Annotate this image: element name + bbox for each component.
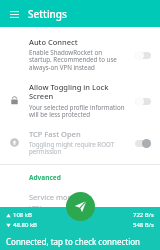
staticText: Your selected profile information will b… [29, 103, 125, 119]
staticText: Enable ShadowRocket on startup. Recommen… [29, 48, 117, 72]
staticText: VPN [29, 204, 42, 207]
staticText: Auto Connect [29, 37, 78, 47]
staticText: Service mode [29, 192, 77, 202]
staticText: TCP Fast Open [29, 129, 81, 139]
button[interactable]: TCP Fast Open [0, 124, 160, 161]
button[interactable]: Allow Toggling in Lock Screen [0, 77, 160, 124]
button[interactable]: Auto Connect [0, 32, 160, 77]
staticText: Toggling might require ROOT permission [29, 140, 115, 156]
staticText: 722 B/s [133, 211, 154, 219]
staticText: 48.80 kB [13, 221, 38, 229]
button[interactable]: Connect [66, 192, 95, 221]
staticText: 108 kB [13, 211, 32, 219]
staticText: Advanced [29, 173, 61, 182]
staticText: 548 B/s [133, 221, 154, 229]
button[interactable]: Toggle TCP Fast Open [132, 135, 154, 151]
staticText: Connected, tap to check connection [6, 236, 141, 247]
button[interactable]: Service mode [0, 192, 160, 207]
button[interactable]: Toggle Auto Connect [132, 47, 154, 63]
staticText: Allow Toggling in Lock Screen [29, 82, 109, 102]
staticText: Settings [28, 7, 67, 21]
button[interactable]: Toggle Allow Toggling in Lock Screen [132, 93, 154, 109]
button[interactable]: Connected, tap to check connection [0, 233, 160, 250]
button[interactable]: Open navigation menu [6, 6, 22, 22]
